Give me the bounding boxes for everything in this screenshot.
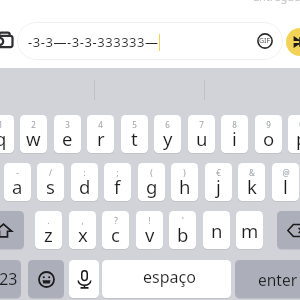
button[interactable]: m — [236, 211, 263, 249]
button[interactable]: 1 — [0, 115, 14, 153]
button[interactable]: ' — [169, 211, 196, 249]
staticText: q — [0, 126, 7, 151]
staticText: ; — [116, 167, 119, 178]
staticText: ! — [148, 215, 151, 226]
staticText: f — [114, 174, 121, 199]
staticText: y — [163, 126, 173, 151]
button[interactable]: Voice input — [69, 260, 99, 298]
button[interactable]: 4 — [87, 115, 114, 153]
staticText: t — [131, 126, 138, 151]
staticText: k — [247, 174, 257, 199]
staticText: g — [146, 174, 158, 199]
button[interactable]: Send — [286, 28, 300, 56]
staticText: 5 — [132, 119, 137, 130]
button[interactable]: ) — [171, 163, 198, 201]
staticText: j — [216, 174, 221, 199]
button[interactable]: 2 — [20, 115, 47, 153]
button[interactable]: 8 — [221, 115, 248, 153]
staticText: 9 — [266, 119, 271, 130]
staticText: : — [83, 167, 86, 178]
staticText: 4 — [98, 119, 103, 130]
staticText: 3 — [65, 119, 70, 130]
button[interactable]: Camera — [0, 29, 28, 60]
staticText: ) — [183, 167, 186, 178]
staticText: 8 — [232, 119, 237, 130]
staticText: ' — [182, 215, 184, 226]
staticText: c — [111, 222, 120, 247]
button[interactable]: ? — [102, 211, 129, 249]
staticText: 0 — [299, 119, 300, 130]
button[interactable]: / — [37, 163, 64, 201]
staticText: / — [49, 167, 52, 178]
button[interactable]: Backspace — [277, 211, 300, 249]
button[interactable]: - — [4, 163, 31, 201]
staticText: enter — [258, 269, 298, 290]
button[interactable]: espaço — [102, 260, 231, 298]
button[interactable]: & — [238, 163, 265, 201]
staticText: s — [46, 174, 55, 199]
button[interactable]: 3 — [54, 115, 81, 153]
button[interactable]: 6 — [154, 115, 181, 153]
staticText: z — [44, 222, 53, 247]
staticText: l — [283, 174, 288, 199]
staticText: espaço — [143, 266, 196, 288]
staticText: a — [12, 174, 23, 199]
staticText: 2 — [31, 119, 36, 130]
staticText: @ — [282, 167, 290, 178]
staticText: w — [26, 126, 41, 151]
staticText: u — [196, 126, 208, 151]
staticText: p — [296, 126, 300, 151]
staticText: e — [62, 126, 73, 151]
staticText: 123 — [0, 268, 18, 290]
button[interactable]: : — [71, 163, 98, 201]
button[interactable]: Shift — [0, 211, 24, 249]
staticText: b — [177, 222, 189, 247]
staticText: & — [249, 167, 255, 178]
staticText: v — [145, 222, 155, 247]
staticText: Entregue — [253, 0, 300, 4]
button[interactable]: Numbers — [0, 260, 21, 298]
staticText: -3-3—-3-3-333333— — [28, 33, 159, 51]
button[interactable]: . — [35, 211, 62, 249]
staticText: o — [263, 126, 275, 151]
button[interactable]: € — [205, 163, 232, 201]
staticText: ( — [150, 167, 153, 178]
staticText: i — [232, 126, 237, 151]
button[interactable]: ; — [104, 163, 131, 201]
button[interactable] — [17, 22, 283, 60]
staticText: x — [78, 222, 88, 247]
staticText: d — [79, 174, 91, 199]
button[interactable]: 5 — [121, 115, 148, 153]
staticText: h — [179, 174, 191, 199]
button[interactable]: n — [203, 211, 230, 249]
button[interactable]: , — [69, 211, 96, 249]
staticText: 1 — [0, 119, 3, 130]
staticText: 7 — [199, 119, 204, 130]
staticText: GIF — [259, 36, 271, 46]
button[interactable]: 9 — [255, 115, 282, 153]
button[interactable]: Emoji — [28, 260, 64, 298]
staticText: . — [47, 215, 50, 226]
button[interactable]: GIF — [257, 33, 273, 49]
staticText: ? — [114, 215, 118, 226]
button[interactable]: 7 — [188, 115, 215, 153]
staticText: r — [97, 126, 105, 151]
staticText: , — [81, 215, 84, 226]
staticText: - — [16, 167, 19, 178]
staticText: m — [241, 218, 259, 243]
button[interactable]: enter — [235, 260, 300, 298]
button[interactable]: ! — [136, 211, 163, 249]
button[interactable]: 0 — [288, 115, 300, 153]
staticText: 6 — [165, 119, 170, 130]
button[interactable]: @ — [272, 163, 299, 201]
staticText: n — [211, 218, 223, 243]
button[interactable]: ( — [138, 163, 165, 201]
staticText: € — [216, 167, 221, 178]
